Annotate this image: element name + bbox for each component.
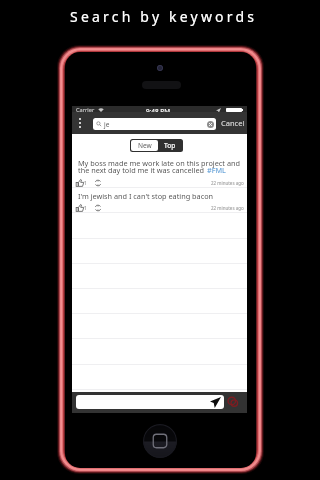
staticText: Search by keywords [70,7,258,26]
button[interactable]: Like [76,204,87,212]
staticText: My boss made me work late on this projec… [78,158,240,168]
button[interactable]: Comments [227,396,239,408]
staticText: Cancel [221,118,245,128]
staticText: je [104,120,110,129]
staticText: Top [164,141,176,150]
staticText: 22 minutes ago [211,205,244,211]
button[interactable]: Repost [94,204,102,212]
button[interactable]: Home [143,424,177,458]
button[interactable]: Repost [94,179,102,187]
button[interactable]: New [131,140,158,151]
staticText: 22 minutes ago [211,180,244,186]
staticText: New [138,141,152,150]
button[interactable]: Like [76,179,87,187]
button[interactable]: My boss made me work late on this projec… [72,155,247,188]
staticText: Carrier [76,106,95,113]
button[interactable] [76,395,224,409]
staticText: #FML [207,165,226,175]
staticText: 9:48 PM [146,107,171,114]
button[interactable]: I'm jewish and I can't stop eating bacon [72,188,247,213]
staticText: I'm jewish and I can't stop eating bacon [78,191,214,201]
staticText: the next day told me it was cancelled [78,165,207,175]
staticText: 1 [84,205,87,211]
button[interactable]: More options [72,112,88,134]
button[interactable]: Cancel [218,112,247,134]
staticText: 1 [84,180,87,186]
button[interactable]: Top [158,140,182,151]
button[interactable]: je [93,118,216,130]
